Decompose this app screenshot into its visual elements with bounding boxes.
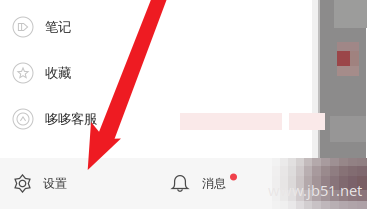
staticText: www.jb51.net bbox=[268, 180, 362, 200]
button[interactable]: 收藏 bbox=[0, 50, 367, 96]
staticText: 设置 bbox=[43, 176, 67, 191]
button[interactable]: 笔记 bbox=[0, 4, 367, 50]
staticText: 消息 bbox=[202, 176, 226, 191]
button[interactable]: 设置 bbox=[0, 158, 77, 209]
staticText: 笔记 bbox=[45, 19, 71, 35]
staticText: 收藏 bbox=[45, 65, 71, 81]
button[interactable]: 消息 bbox=[171, 158, 237, 209]
button[interactable]: 哆哆客服 bbox=[0, 96, 367, 142]
staticText: 哆哆客服 bbox=[45, 111, 97, 127]
